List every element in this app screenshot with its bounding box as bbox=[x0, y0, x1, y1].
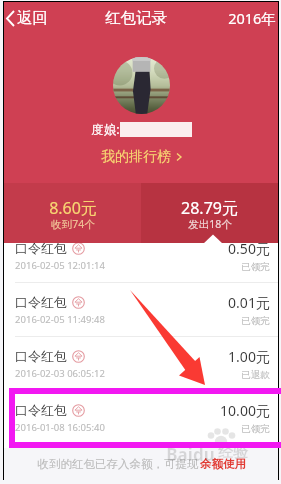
staticText: 2016-02-05 11:49:48 bbox=[15, 313, 105, 326]
staticText: 度娘: bbox=[91, 121, 120, 138]
button[interactable]: 口令红包 bbox=[4, 337, 278, 391]
staticText: 口令红包 bbox=[15, 348, 67, 364]
staticText: Baidu bbox=[166, 443, 215, 466]
staticText: 收到的红包已存入余额，可提现 bbox=[36, 456, 200, 472]
button[interactable]: 口令红包 bbox=[4, 391, 278, 445]
staticText: 0.01元 bbox=[228, 293, 270, 312]
staticText: 2016-02-05 12:01:14 bbox=[15, 259, 105, 272]
button[interactable]: 口令红包 bbox=[4, 283, 278, 337]
staticText: 0.50元 bbox=[228, 239, 270, 258]
button[interactable]: 2016年 bbox=[222, 2, 278, 33]
staticText: 经验 bbox=[218, 443, 248, 462]
button[interactable]: 返回 bbox=[4, 5, 56, 31]
staticText: 8.60元 bbox=[49, 197, 97, 219]
staticText: 10.00元 bbox=[220, 401, 270, 420]
staticText: 发出18个 bbox=[188, 217, 232, 231]
staticText: 余额使用 bbox=[200, 457, 246, 471]
staticText: 2016-01-08 16:05:40 bbox=[15, 421, 105, 434]
button[interactable]: 8.60元 bbox=[4, 183, 141, 243]
staticText: 口令红包 bbox=[15, 294, 67, 310]
button[interactable]: 口令红包 bbox=[4, 229, 278, 283]
button[interactable]: 28.79元 bbox=[141, 183, 278, 243]
staticText: 口令红包 bbox=[15, 402, 67, 418]
staticText: 已领完 bbox=[241, 315, 270, 327]
staticText: 红包记录 bbox=[105, 8, 167, 28]
staticText: 收到74个 bbox=[51, 217, 95, 231]
staticText: 2016-02-03 06:05:12 bbox=[15, 367, 105, 380]
staticText: 28.79元 bbox=[181, 197, 238, 219]
staticText: 已领完 bbox=[241, 261, 270, 273]
staticText: 已退款 bbox=[241, 369, 270, 381]
button[interactable]: 我的排行榜 bbox=[4, 148, 278, 166]
staticText: 口令红包 bbox=[15, 240, 67, 256]
staticText: 返回 bbox=[17, 8, 48, 28]
staticText: 1.00元 bbox=[228, 347, 270, 366]
staticText: 我的排行榜 bbox=[101, 148, 171, 166]
staticText: 已领完 bbox=[241, 423, 270, 435]
